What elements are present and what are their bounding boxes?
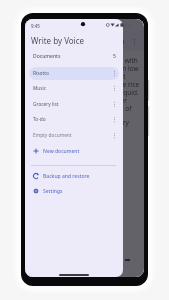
other: More options [113, 85, 116, 92]
staticText: Grocery list [33, 101, 59, 108]
staticText: absorbs the liquid. [82, 88, 139, 97]
button[interactable]: Risotto [29, 67, 119, 80]
staticText: To-do [33, 116, 46, 123]
button[interactable]: New document [25, 145, 123, 157]
staticText: rice, cooked on low [80, 64, 139, 73]
staticText: stirring until the rice [77, 80, 140, 89]
staticText: Documents [33, 53, 61, 60]
staticText: Risotto [33, 70, 49, 77]
other: More options [113, 116, 116, 123]
button[interactable]: Settings [25, 185, 123, 197]
button[interactable]: Grocery list [29, 98, 119, 111]
button[interactable]: To-do [29, 113, 119, 126]
staticText: and a lot of [97, 104, 132, 113]
staticText: Risotto [103, 37, 125, 46]
staticText: Settings [43, 188, 63, 195]
staticText: Write by Voice [31, 35, 85, 46]
button[interactable]: Backup and restore [25, 170, 123, 182]
staticText: heat [112, 72, 126, 81]
other: More options [113, 70, 116, 77]
other: More options [113, 132, 116, 139]
other: More options [133, 38, 136, 45]
staticText: Risotto is made with [76, 56, 138, 65]
staticText: New document [43, 148, 80, 155]
staticText: Add butter [94, 96, 127, 105]
staticText: parmesan. Very [81, 118, 129, 127]
staticText: Empty document [33, 132, 72, 139]
staticText: Music [33, 85, 47, 92]
button[interactable]: Empty document [29, 129, 119, 142]
button[interactable]: Music [29, 82, 119, 95]
staticText: 5 [113, 53, 116, 60]
staticText: Backup and restore [43, 173, 90, 180]
staticText: 9:45 [31, 23, 40, 29]
other: More options [113, 101, 116, 108]
